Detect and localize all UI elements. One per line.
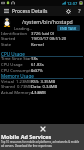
staticText: Data: 0.34MB — [31, 84, 58, 90]
button[interactable]: Close ad — [0, 124, 84, 150]
button[interactable]: Menu — [0, 6, 12, 16]
staticText: Actual Memory Used — [1, 90, 42, 96]
staticText: Process Details — [12, 8, 48, 15]
staticText: CPU Usage — [1, 51, 25, 57]
staticText: Virtual 1.23MB — [1, 79, 31, 85]
staticText: Identification — [1, 31, 28, 37]
staticText: 61.83s — [31, 62, 44, 68]
staticText: /system/bin/hostapd — [22, 18, 73, 25]
staticText: Shared 0.73MB — [1, 84, 32, 90]
button[interactable]: END TASK — [57, 25, 80, 31]
staticText: 0.07% — [31, 68, 43, 74]
staticText: 18s — [31, 56, 38, 62]
staticText: Started — [1, 36, 16, 42]
staticText: Kernel — [31, 42, 44, 48]
staticText: 12:07 — [67, 1, 78, 6]
staticText: Mobile Ad Services — [1, 133, 52, 140]
staticText: ad servers. Download the free report now… — [1, 144, 53, 148]
staticText: State — [1, 42, 12, 48]
staticText: RSS: 3.35MB — [31, 79, 56, 85]
staticText: 19/03/17 08:51:20 — [31, 36, 67, 42]
staticText: ? — [78, 7, 81, 15]
staticText: 4.13MB — [31, 90, 46, 96]
button[interactable]: Settings — [63, 6, 74, 16]
staticText: CPU Consumption — [1, 68, 37, 74]
staticText: Time Since Start — [1, 56, 33, 62]
button[interactable]: Help — [74, 6, 84, 16]
staticText: Loading... — [14, 26, 33, 31]
staticText: 3726 (uid 0) — [31, 31, 54, 37]
button[interactable]: Close ad — [39, 125, 46, 132]
staticText: CPU Usage — [1, 62, 23, 68]
staticText: END TASK — [60, 26, 77, 31]
staticText: Memory Usage — [1, 73, 34, 79]
staticText: Top 10 resources for mobile ad platforms… — [1, 140, 80, 144]
